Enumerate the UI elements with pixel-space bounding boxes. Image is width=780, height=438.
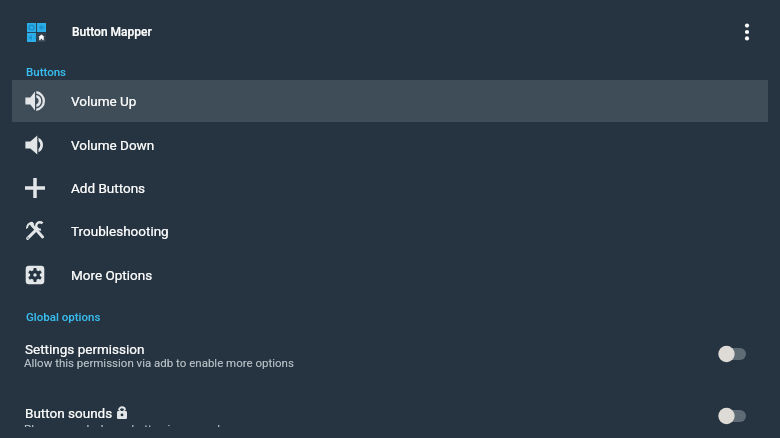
staticText: More Options: [71, 267, 153, 283]
staticText: Add Buttons: [71, 180, 146, 196]
staticText: Global options: [26, 310, 101, 323]
button[interactable]: Settings permission: [0, 331, 780, 377]
button[interactable]: Troubleshooting: [12, 210, 768, 252]
staticText: Troubleshooting: [71, 223, 169, 239]
staticText: Button sounds: [25, 405, 113, 421]
staticText: Volume Up: [71, 93, 137, 109]
staticText: Button Mapper: [72, 25, 152, 39]
staticText: Play a sound when a button is pressed: [24, 422, 220, 427]
button[interactable]: Button sounds: [0, 395, 780, 427]
staticText: Buttons: [26, 65, 67, 78]
staticText: Settings permission: [25, 341, 145, 357]
button[interactable]: More Options: [12, 254, 768, 296]
button[interactable]: Toggle Settings permission: [701, 336, 757, 372]
button[interactable]: Add Buttons: [12, 167, 768, 209]
button[interactable]: Volume Up: [12, 80, 768, 122]
staticText: Allow this permission via adb to enable …: [24, 356, 294, 369]
button[interactable]: More options: [724, 9, 770, 55]
button[interactable]: Volume Down: [12, 124, 768, 166]
button[interactable]: Toggle Button sounds: [701, 400, 757, 427]
staticText: Volume Down: [71, 137, 155, 153]
